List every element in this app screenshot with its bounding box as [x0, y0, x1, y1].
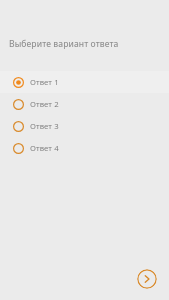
button[interactable]: Ответ 2 [0, 93, 169, 115]
staticText: Ответ 4 [30, 143, 59, 154]
button[interactable]: Ответ 4 [0, 137, 169, 159]
button[interactable]: Далее [137, 269, 157, 289]
button[interactable]: Ответ 1 [0, 71, 169, 93]
button[interactable]: Ответ 3 [0, 115, 169, 137]
staticText: Ответ 1 [30, 77, 59, 88]
staticText: Выберите вариант ответа [9, 38, 160, 50]
staticText: Ответ 3 [30, 121, 59, 132]
staticText: Ответ 2 [30, 99, 59, 110]
